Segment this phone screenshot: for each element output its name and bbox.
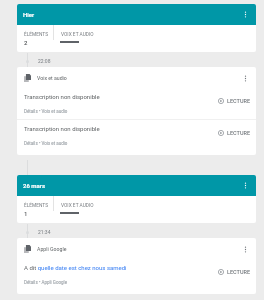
staticText: 22:08 (38, 58, 51, 64)
staticText: VOIX ET AUDIO (61, 203, 94, 209)
staticText: 2 (24, 39, 28, 46)
button[interactable]: VOIX ET AUDIO (54, 196, 94, 214)
button[interactable]: VOIX ET AUDIO (54, 25, 94, 43)
staticText: Détails • Voix et audio (24, 109, 68, 114)
button[interactable]: Voix et audio (17, 67, 256, 88)
button[interactable]: 26 mars (17, 175, 256, 196)
staticText: ÉLÉMENTS (24, 32, 48, 38)
button[interactable]: ÉLÉMENTS (17, 25, 53, 46)
button[interactable]: More options (235, 68, 255, 88)
staticText: ÉLÉMENTS (24, 203, 48, 209)
staticText: LECTURE (227, 98, 251, 104)
button[interactable]: Transcription non disponible (17, 120, 256, 151)
staticText: Détails • Appli Google (24, 280, 68, 285)
staticText: 21:34 (38, 229, 51, 235)
staticText: 1 (24, 210, 28, 217)
staticText: Voix et audio (37, 75, 67, 81)
staticText: Transcription non disponible (24, 125, 100, 132)
button[interactable]: Transcription non disponible (17, 88, 256, 119)
staticText: VOIX ET AUDIO (61, 32, 94, 38)
button[interactable]: ÉLÉMENTS (17, 196, 53, 217)
staticText: Transcription non disponible (24, 93, 100, 100)
button[interactable]: LECTURE (217, 97, 252, 105)
button[interactable]: More options (235, 239, 255, 259)
button[interactable]: Appli Google (17, 238, 256, 259)
button[interactable]: LECTURE (217, 268, 252, 276)
button[interactable]: Hier (17, 4, 256, 25)
staticText: Hier (23, 11, 35, 18)
staticText: A dit quelle date est chez nous samedi (24, 264, 127, 271)
staticText: LECTURE (227, 269, 251, 275)
button[interactable]: A dit quelle date est chez nous samedi (17, 259, 256, 290)
staticText: 26 mars (23, 182, 45, 189)
staticText: Appli Google (37, 246, 67, 252)
staticText: LECTURE (227, 130, 251, 136)
button[interactable]: More options (235, 4, 256, 25)
button[interactable]: More options (235, 175, 256, 196)
button[interactable]: LECTURE (217, 129, 252, 137)
staticText: Détails • Voix et audio (24, 141, 68, 146)
